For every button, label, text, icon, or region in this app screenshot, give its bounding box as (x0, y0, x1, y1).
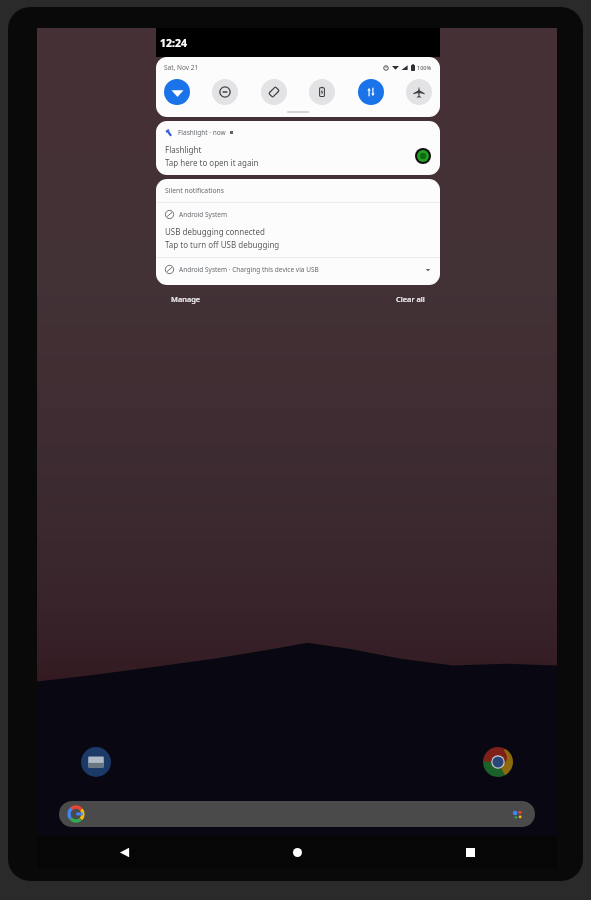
button[interactable]: Airplane mode (406, 79, 432, 105)
staticText: Silent notifications (165, 186, 224, 195)
button[interactable]: Messages (75, 741, 117, 783)
staticText: Clear all (396, 294, 425, 304)
staticText: Tap to turn off USB debugging (165, 239, 280, 250)
staticText: Android System · Charging this device vi… (179, 265, 319, 274)
button[interactable]: Back (37, 836, 211, 869)
staticText: USB debugging connected (165, 226, 265, 237)
staticText: Sat, Nov 21 (164, 63, 199, 72)
button[interactable]: Wi-Fi (164, 79, 190, 105)
staticText: Flashlight · now (178, 128, 226, 137)
button[interactable]: Chrome (477, 741, 519, 783)
button[interactable]: Flashlight · now (156, 121, 440, 175)
button[interactable]: Do Not Disturb (212, 79, 238, 105)
button[interactable]: Android System (156, 203, 440, 257)
button[interactable]: Manage (167, 292, 205, 306)
button[interactable]: Clear all (392, 292, 429, 306)
button[interactable]: Flashlight app icon (415, 148, 431, 164)
button[interactable]: Google Search (59, 801, 535, 827)
staticText: Android System (179, 210, 228, 219)
staticText: Manage (171, 294, 201, 304)
button[interactable]: Auto-rotate (261, 79, 287, 105)
staticText: Tap here to open it again (165, 157, 259, 168)
button[interactable]: Recent apps (384, 836, 557, 869)
staticText: 100% (417, 64, 432, 71)
button[interactable]: Home (211, 836, 384, 869)
staticText: Flashlight (165, 144, 202, 155)
button[interactable]: Mobile data (358, 79, 384, 105)
button[interactable]: Battery Saver (309, 79, 335, 105)
button[interactable]: Silent notifications (156, 179, 440, 202)
button[interactable]: Android System · Charging this device vi… (156, 258, 440, 281)
staticText: 12:24 (160, 36, 187, 50)
